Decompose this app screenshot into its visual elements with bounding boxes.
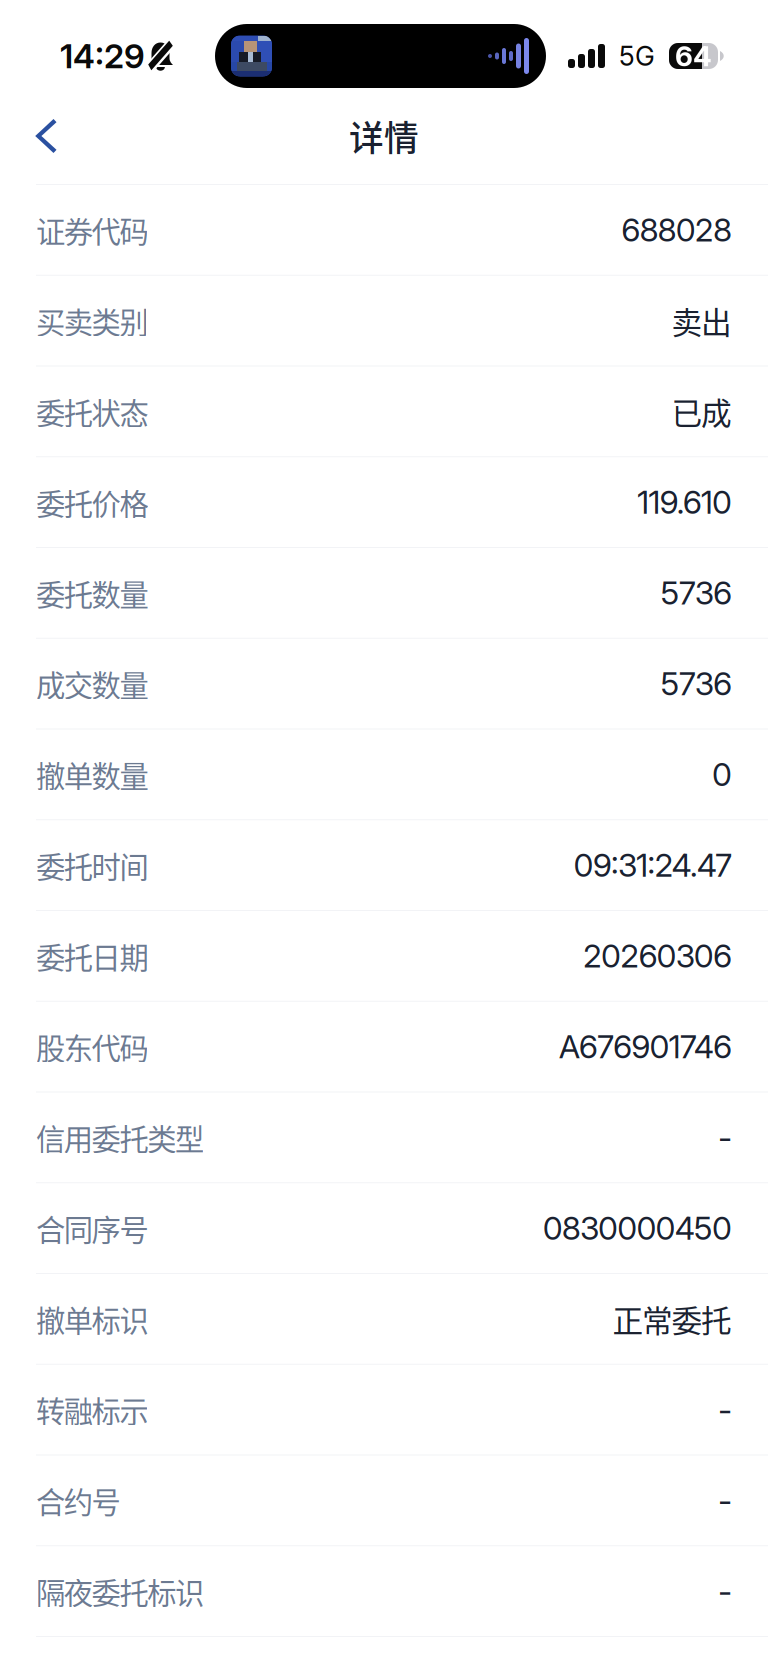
staticText: 转融标示: [36, 1388, 148, 1431]
button[interactable]: 合约号: [0, 1455, 768, 1546]
staticText: 正常委托: [612, 1297, 732, 1341]
button[interactable]: 股东代码: [0, 1002, 768, 1093]
staticText: A676901746: [559, 1027, 732, 1066]
staticText: 14:29: [60, 36, 145, 76]
button[interactable]: 委托日期: [0, 911, 768, 1002]
staticText: 119.610: [637, 483, 732, 521]
staticText: 信用委托类型: [36, 1116, 204, 1159]
button[interactable]: 委托数量: [0, 548, 768, 639]
button[interactable]: 委托时间: [0, 820, 768, 911]
staticText: 5736: [660, 664, 732, 703]
staticText: 详情: [349, 111, 419, 161]
staticText: 隔夜委托标识: [36, 1570, 204, 1612]
staticText: 已成: [671, 389, 732, 434]
button[interactable]: 信用委托类型: [0, 1092, 768, 1183]
staticText: 卖出: [671, 298, 732, 343]
staticText: 成交数量: [36, 662, 148, 705]
staticText: 0: [712, 755, 732, 794]
staticText: 委托数量: [36, 572, 148, 614]
staticText: 撤单标识: [36, 1298, 148, 1340]
staticText: 股东代码: [36, 1025, 148, 1068]
staticText: 证券代码: [36, 209, 148, 251]
staticText: 合约号: [36, 1479, 121, 1522]
button[interactable]: 转融标示: [0, 1365, 768, 1456]
button[interactable]: 撤单数量: [0, 729, 768, 820]
staticText: 委托时间: [36, 844, 148, 886]
staticText: 64: [675, 39, 712, 73]
button[interactable]: 合同序号: [0, 1183, 768, 1274]
staticText: 委托日期: [36, 935, 148, 977]
staticText: -: [718, 1572, 732, 1610]
button[interactable]: 隔夜委托标识: [0, 1546, 768, 1637]
button[interactable]: 成交数量: [0, 639, 768, 730]
staticText: 5G: [619, 40, 655, 72]
staticText: 委托状态: [36, 390, 148, 433]
staticText: 5736: [660, 573, 732, 612]
button[interactable]: 买卖类别: [0, 276, 768, 367]
staticText: 委托价格: [36, 481, 148, 523]
button[interactable]: Back: [0, 88, 80, 184]
staticText: -: [718, 1481, 732, 1520]
button[interactable]: 委托价格: [0, 457, 768, 548]
staticText: 合同序号: [36, 1207, 148, 1249]
staticText: 撤单数量: [36, 753, 148, 796]
staticText: 09:31:24.47: [573, 846, 732, 884]
button[interactable]: 撤单标识: [0, 1274, 768, 1365]
staticText: 688028: [621, 210, 732, 249]
staticText: 20260306: [583, 936, 732, 975]
button[interactable]: 证券代码: [0, 185, 768, 276]
staticText: -: [718, 1118, 732, 1157]
staticText: 0830000450: [543, 1209, 732, 1247]
staticText: -: [718, 1390, 732, 1429]
staticText: 买卖类别: [36, 299, 148, 342]
button[interactable]: 委托状态: [0, 366, 768, 457]
